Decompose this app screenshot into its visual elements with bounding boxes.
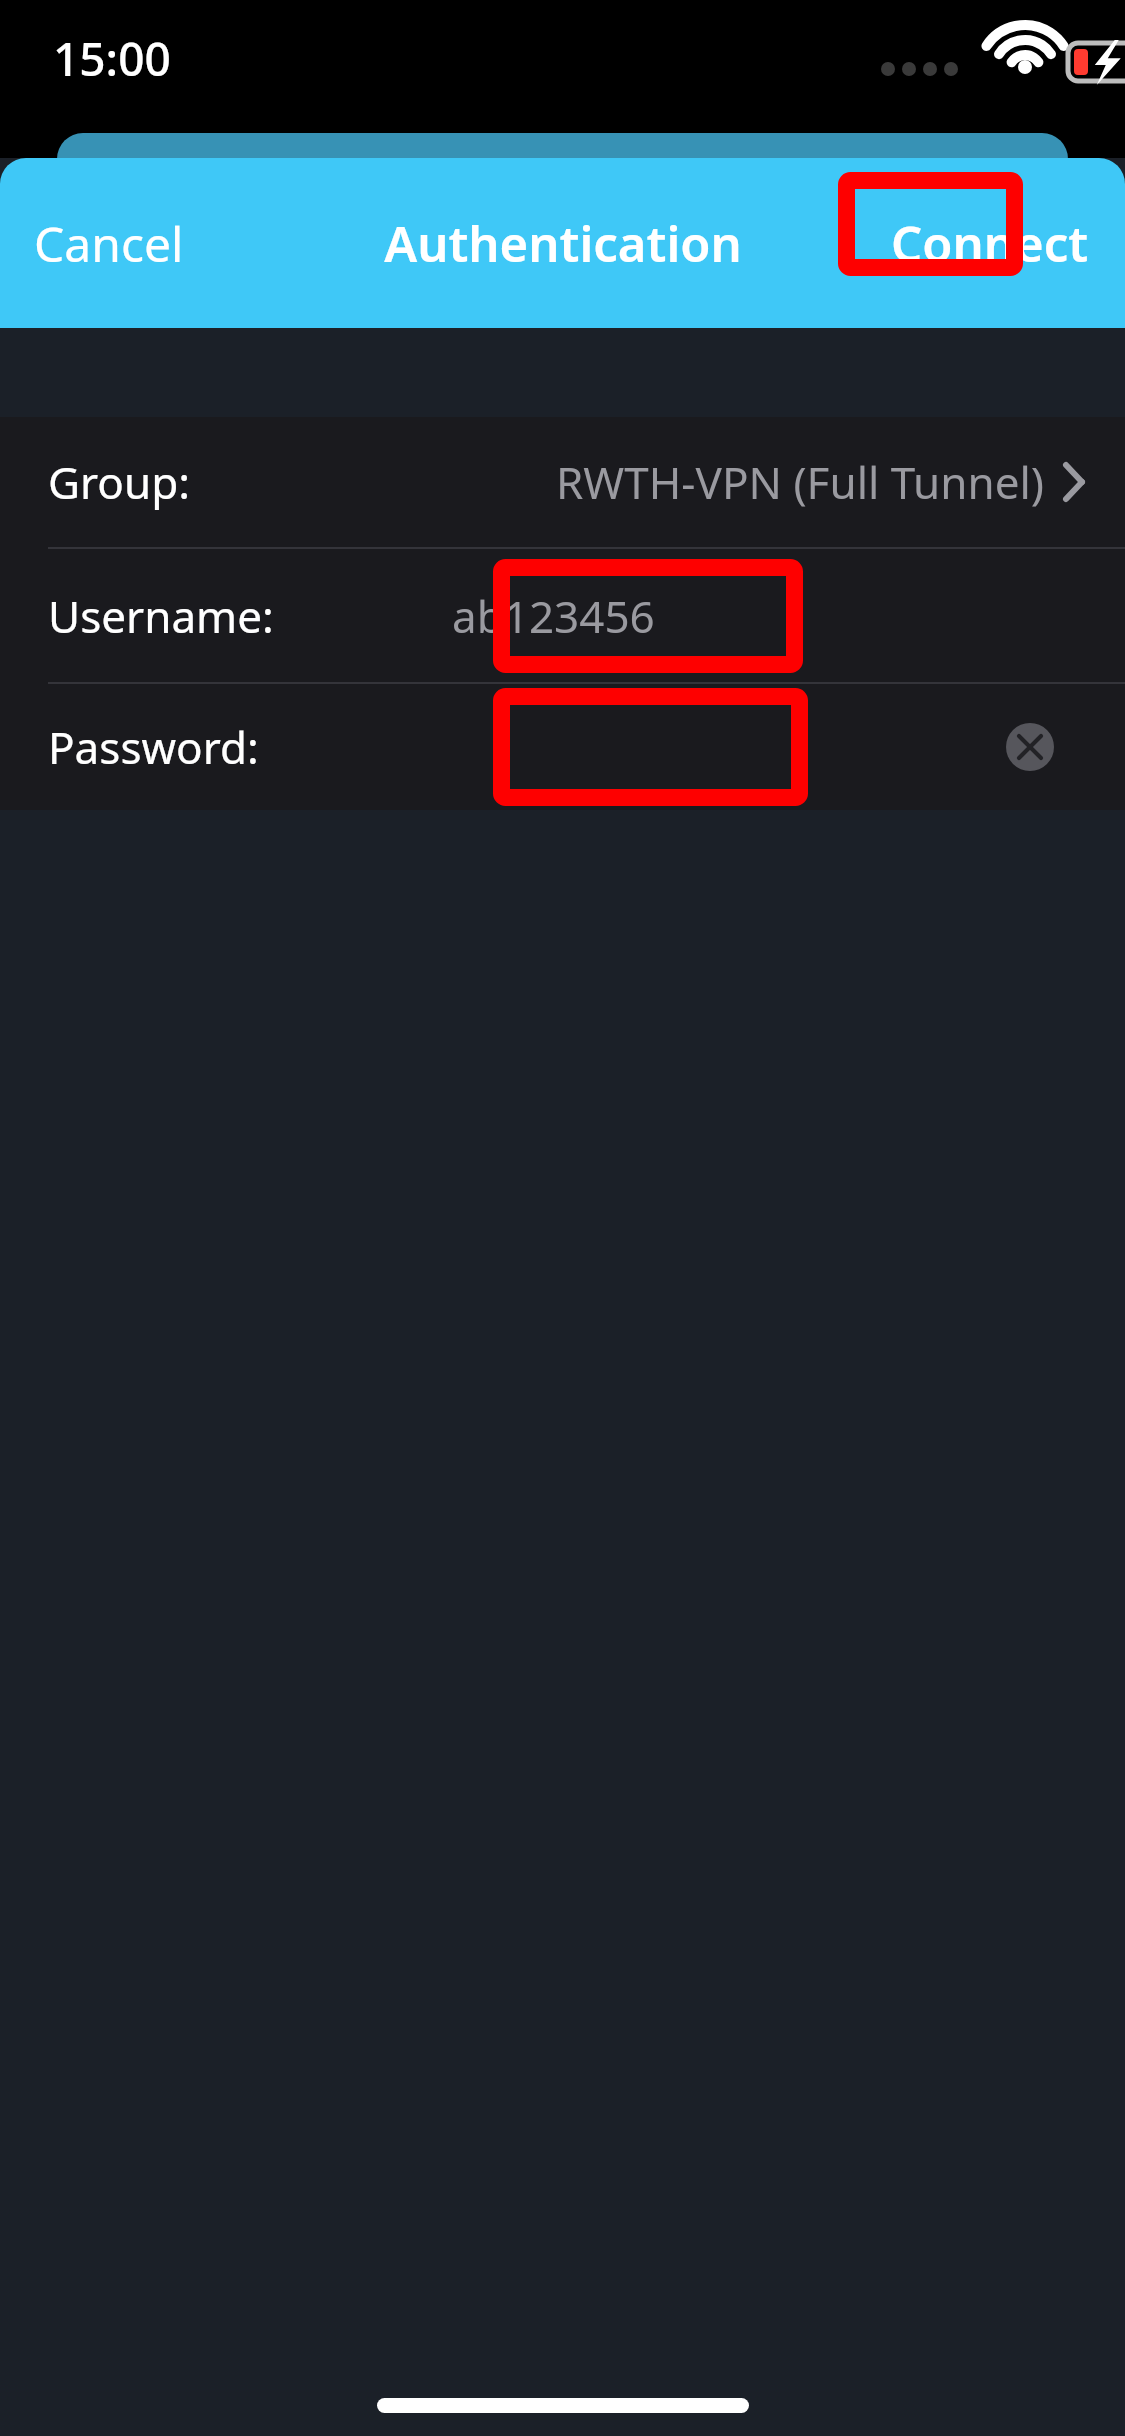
staticText: Authentication	[384, 210, 742, 277]
staticText: Password:	[48, 717, 259, 777]
staticText: Username:	[48, 586, 274, 646]
button[interactable]: Clear password	[983, 700, 1077, 794]
button[interactable]: Group:	[0, 417, 1125, 547]
staticText: RWTH-VPN (Full Tunnel)	[556, 452, 1045, 512]
staticText: 15:00	[53, 27, 171, 90]
staticText: Connect	[891, 210, 1089, 277]
staticText: ab123456	[452, 586, 655, 646]
button[interactable]: Cancel	[20, 197, 198, 290]
staticText: Cancel	[34, 211, 184, 276]
button[interactable]: Username:	[0, 549, 1125, 682]
staticText: Group:	[48, 452, 190, 512]
button[interactable]: Connect	[877, 196, 1103, 291]
button[interactable]: Password:	[0, 684, 1125, 810]
